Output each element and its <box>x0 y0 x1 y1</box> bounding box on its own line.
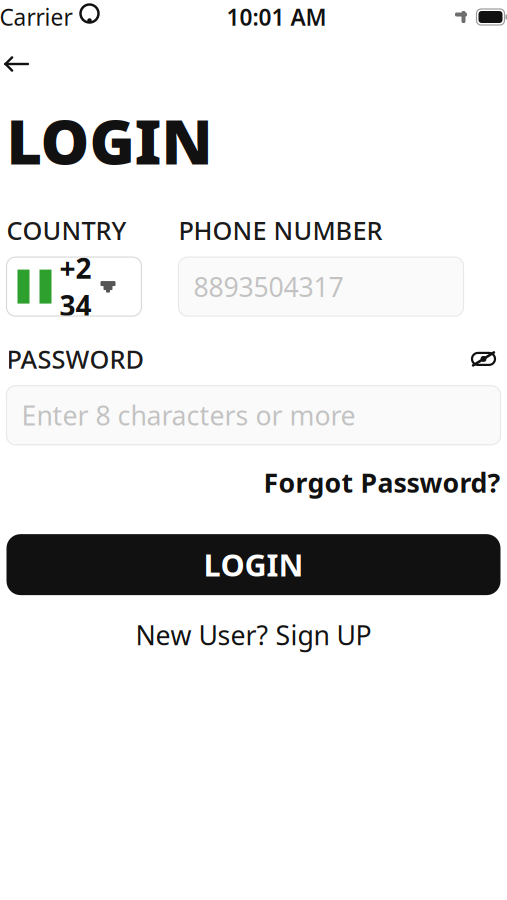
staticText: PHONE NUMBER <box>178 213 382 247</box>
button[interactable]: Select country code, currently +234 <box>6 257 141 316</box>
button[interactable]: Show password <box>466 346 500 372</box>
staticText: +234 <box>59 249 91 324</box>
staticText: Enter 8 characters or more <box>21 397 355 433</box>
button[interactable]: New User? Sign UP <box>135 617 371 652</box>
button[interactable]: Forgot Password? <box>263 465 500 500</box>
staticText: New User? Sign UP <box>135 617 371 652</box>
button[interactable]: Password <box>6 386 500 445</box>
staticText: Forgot Password? <box>263 465 500 500</box>
staticText: LOGIN <box>203 544 303 585</box>
staticText: PASSWORD <box>6 342 144 376</box>
button[interactable]: Back <box>0 42 38 86</box>
staticText: 10:01 AM <box>226 2 326 32</box>
staticText: LOGIN <box>6 100 212 181</box>
button[interactable]: Phone number <box>178 257 463 316</box>
staticText: Carrier <box>0 2 72 32</box>
staticText: COUNTRY <box>6 213 126 247</box>
staticText: 8893504317 <box>193 269 343 304</box>
button[interactable]: LOGIN <box>6 534 500 595</box>
